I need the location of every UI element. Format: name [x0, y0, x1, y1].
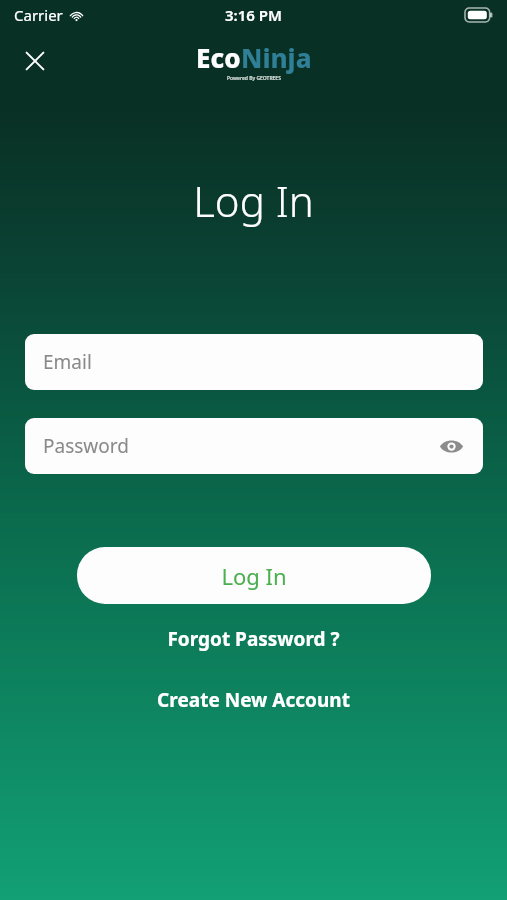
staticText: Forgot Password ? — [167, 626, 340, 652]
staticText: Log In — [221, 561, 287, 591]
staticText: Email — [43, 349, 92, 375]
staticText: Carrier — [14, 5, 63, 25]
button[interactable]: Close — [14, 40, 56, 82]
staticText: Ninja — [241, 40, 312, 75]
button[interactable]: Password — [25, 418, 483, 474]
staticText: Eco — [196, 40, 241, 75]
button[interactable]: Email — [25, 334, 483, 390]
button[interactable]: Show password — [433, 428, 469, 464]
button[interactable]: Create New Account — [139, 679, 368, 721]
staticText: Create New Account — [157, 687, 350, 713]
staticText: Password — [43, 433, 129, 459]
button[interactable]: Log In — [77, 547, 431, 604]
button[interactable]: Forgot Password ? — [149, 618, 358, 660]
staticText: Log In — [193, 172, 314, 229]
staticText: 3:16 PM — [225, 5, 282, 25]
staticText: Powered By GEOTREES — [227, 75, 281, 82]
